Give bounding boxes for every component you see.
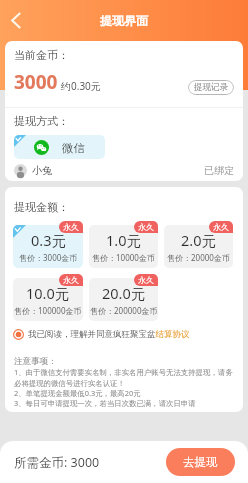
staticText: 提现金额： (14, 200, 69, 214)
button[interactable]: 20.0元 (89, 278, 158, 321)
staticText: 售价：200000金币 (90, 305, 158, 316)
staticText: 2、单笔提现金额最低0.3元，最高20元 (14, 388, 141, 398)
staticText: 当前金币： (14, 48, 69, 62)
button[interactable]: 2.0元 (164, 225, 233, 268)
staticText: 3000 (14, 69, 58, 95)
staticText: 所需金币: 3000 (14, 454, 100, 471)
staticText: 永久 (138, 275, 154, 285)
staticText: 2.0元 (181, 230, 216, 250)
staticText: 去提现 (183, 455, 218, 469)
staticText: 1、由于微信支付需要实名制，非实名用户账号无法支持提现，请务必将提现的微信号进行… (14, 367, 234, 388)
staticText: 已绑定 (204, 164, 234, 177)
staticText: 0.3元 (31, 230, 66, 250)
staticText: 3、每日可申请提现一次，若当日次数已满，请次日申请 (14, 398, 196, 408)
staticText: 10.0元 (26, 283, 70, 303)
button[interactable]: 1.0元 (89, 225, 158, 268)
staticText: 约0.30元 (61, 79, 101, 93)
button[interactable]: 微信 (14, 135, 105, 159)
staticText: 售价：10000金币 (92, 252, 155, 263)
staticText: 永久 (138, 222, 154, 232)
button[interactable]: 去提现 (166, 448, 235, 476)
staticText: 售价：20000金币 (167, 252, 230, 263)
staticText: 1.0元 (106, 230, 141, 250)
staticText: 微信 (62, 141, 85, 155)
staticText: 提现记录 (194, 82, 228, 93)
staticText: 永久 (63, 222, 79, 232)
button[interactable]: 提现记录 (188, 80, 234, 95)
staticText: 永久 (213, 222, 229, 232)
staticText: 我已阅读，理解并同意疯狂聚宝盆结算协议 (28, 329, 190, 340)
staticText: 20.0元 (102, 283, 146, 303)
button[interactable]: 0.3元 (13, 225, 83, 268)
button[interactable]: 10.0元 (13, 278, 83, 321)
staticText: 注意事项： (14, 356, 57, 367)
button[interactable]: Back (4, 0, 28, 41)
staticText: 售价：100000金币 (14, 305, 82, 316)
staticText: 永久 (63, 275, 79, 285)
staticText: 提现界面 (100, 13, 148, 28)
staticText: 售价：3000金币 (19, 252, 78, 263)
staticText: 小兔 (32, 164, 52, 177)
staticText: 提现方式： (14, 114, 69, 128)
